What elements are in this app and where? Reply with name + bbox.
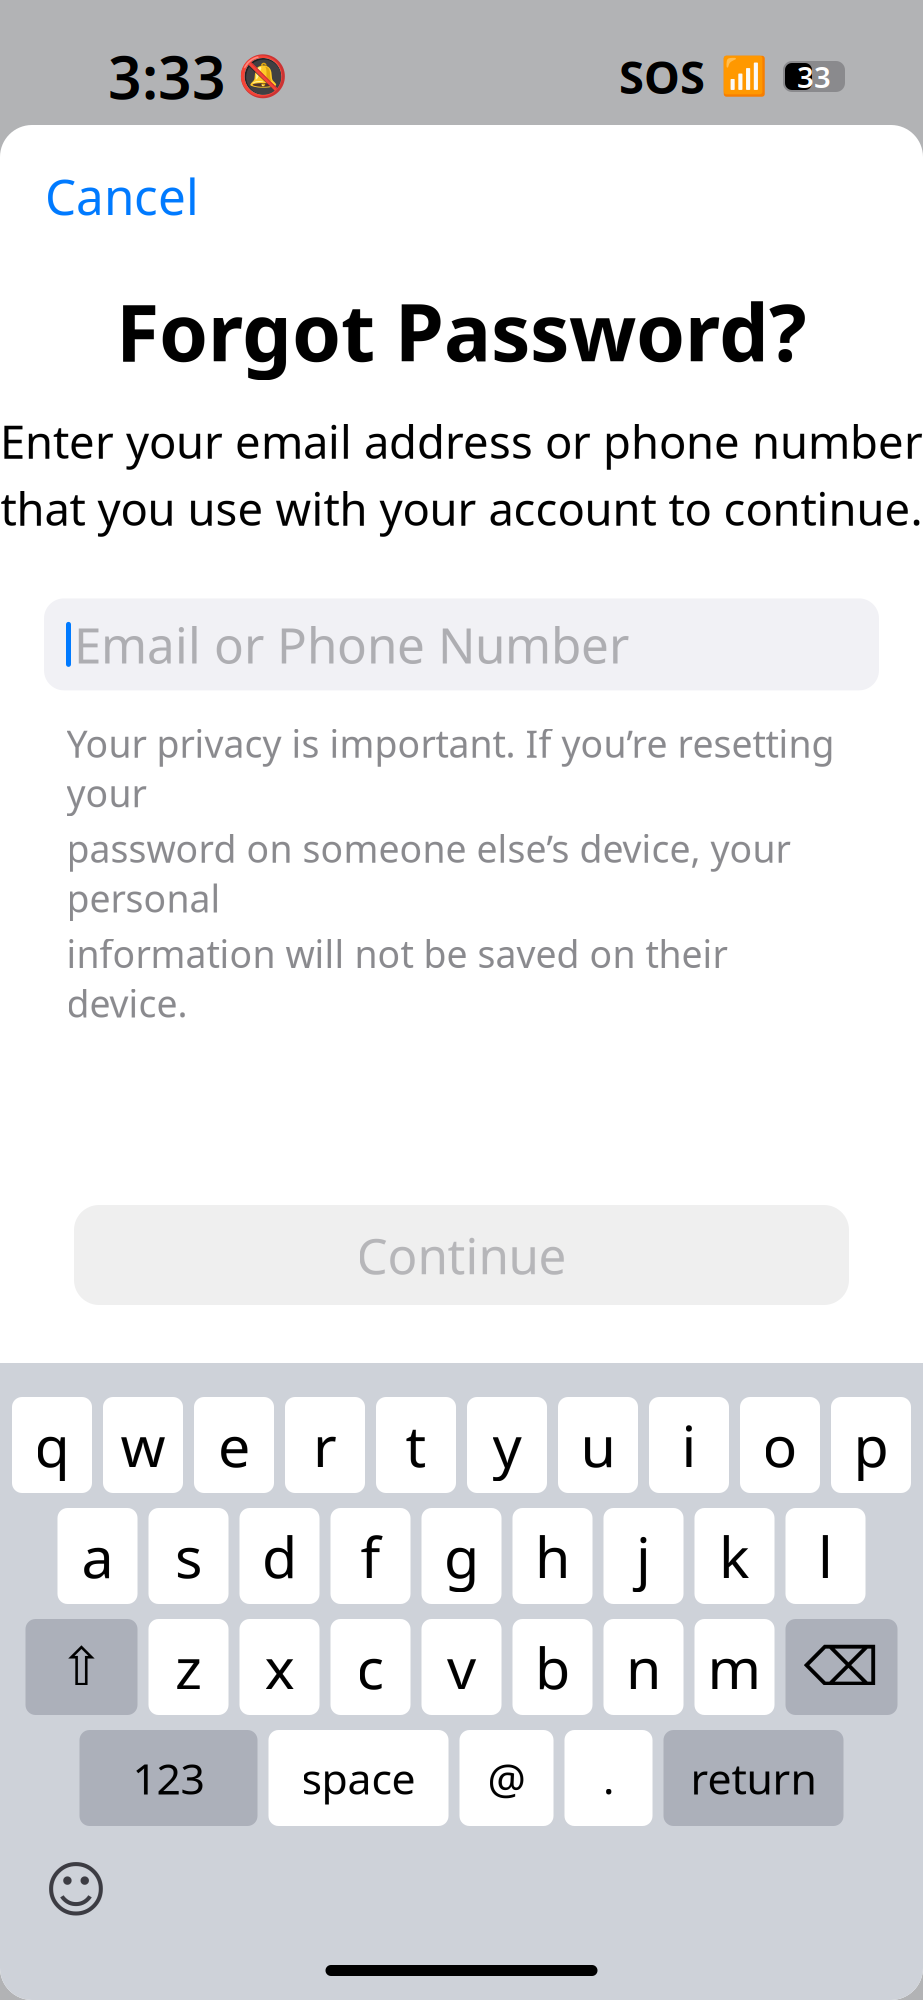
button[interactable]: m [694,1619,774,1715]
staticText: v [447,1629,476,1705]
staticText: p [853,1407,888,1483]
staticText: information will not be saved on their d… [66,929,727,1028]
staticText: k [719,1518,750,1594]
button[interactable]: h [512,1508,592,1604]
button[interactable]: q [12,1397,92,1493]
staticText: m [707,1629,761,1705]
staticText: j [636,1518,651,1594]
staticText: Your privacy is important. If you’re res… [66,718,834,818]
button[interactable]: . [564,1730,652,1826]
button[interactable]: p [831,1397,911,1493]
staticText: Enter your email address or phone number [0,411,923,471]
button[interactable]: k [694,1508,774,1604]
staticText: Email or Phone Number [74,612,629,677]
staticText: ☺ [44,1855,108,1925]
staticText: u [580,1407,615,1483]
staticText: 📶 [721,55,767,98]
staticText: 🔕 [238,54,288,99]
button[interactable]: Emoji keyboard [40,1854,112,1926]
button[interactable]: g [421,1508,501,1604]
staticText: d [262,1518,297,1594]
button[interactable]: space [268,1730,448,1826]
button[interactable]: y [467,1397,547,1493]
staticText: l [818,1518,833,1594]
staticText: y [492,1407,521,1483]
staticText: q [34,1407,69,1483]
button[interactable]: d [239,1508,319,1604]
staticText: b [535,1629,570,1705]
button[interactable]: a [57,1508,137,1604]
button[interactable]: v [421,1619,501,1715]
staticText: x [264,1629,294,1705]
staticText: r [313,1407,337,1483]
staticText: password on someone else’s device, your … [66,823,790,923]
staticText: g [444,1518,479,1594]
button[interactable]: w [103,1397,183,1493]
button[interactable]: r [285,1397,365,1493]
staticText: h [535,1518,570,1594]
staticText: t [405,1407,426,1483]
button[interactable]: s [148,1508,228,1604]
button[interactable]: return [663,1730,843,1826]
button[interactable]: Continue [74,1205,849,1305]
staticText: ⇧ [59,1637,104,1697]
button[interactable]: e [194,1397,274,1493]
staticText: 33 [797,57,831,96]
button[interactable]: z [148,1619,228,1715]
button[interactable]: n [603,1619,683,1715]
button[interactable]: Shift [25,1619,137,1715]
button[interactable]: b [512,1619,592,1715]
button[interactable]: o [740,1397,820,1493]
staticText: z [175,1629,202,1705]
staticText: i [681,1407,696,1483]
staticText: ⌫ [804,1637,879,1697]
button[interactable]: 123 [79,1730,257,1826]
button[interactable]: Delete [785,1619,897,1715]
button[interactable]: j [603,1508,683,1604]
staticText: Forgot Password? [116,278,807,383]
staticText: return [690,1750,816,1806]
staticText: . [603,1750,614,1806]
staticText: e [218,1407,250,1483]
staticText: c [356,1629,384,1705]
button[interactable]: x [239,1619,319,1715]
staticText: @ [487,1750,525,1806]
button[interactable]: c [330,1619,410,1715]
button[interactable]: f [330,1508,410,1604]
staticText: a [81,1518,113,1594]
staticText: space [301,1750,415,1806]
staticText: w [120,1407,165,1483]
staticText: o [762,1407,797,1483]
staticText: that you use with your account to contin… [0,478,922,538]
button[interactable]: t [376,1397,456,1493]
button[interactable]: u [558,1397,638,1493]
staticText: Cancel [45,163,199,228]
button[interactable]: @ [459,1730,553,1826]
staticText: Continue [356,1222,566,1288]
button[interactable]: Cancel [35,155,209,236]
staticText: f [360,1518,380,1594]
staticText: 123 [132,1750,204,1806]
button[interactable]: l [785,1508,865,1604]
staticText: n [626,1629,661,1705]
staticText: SOS [619,46,705,107]
staticText: 3:33 [108,37,226,115]
button[interactable]: i [649,1397,729,1493]
staticText: s [175,1518,202,1594]
